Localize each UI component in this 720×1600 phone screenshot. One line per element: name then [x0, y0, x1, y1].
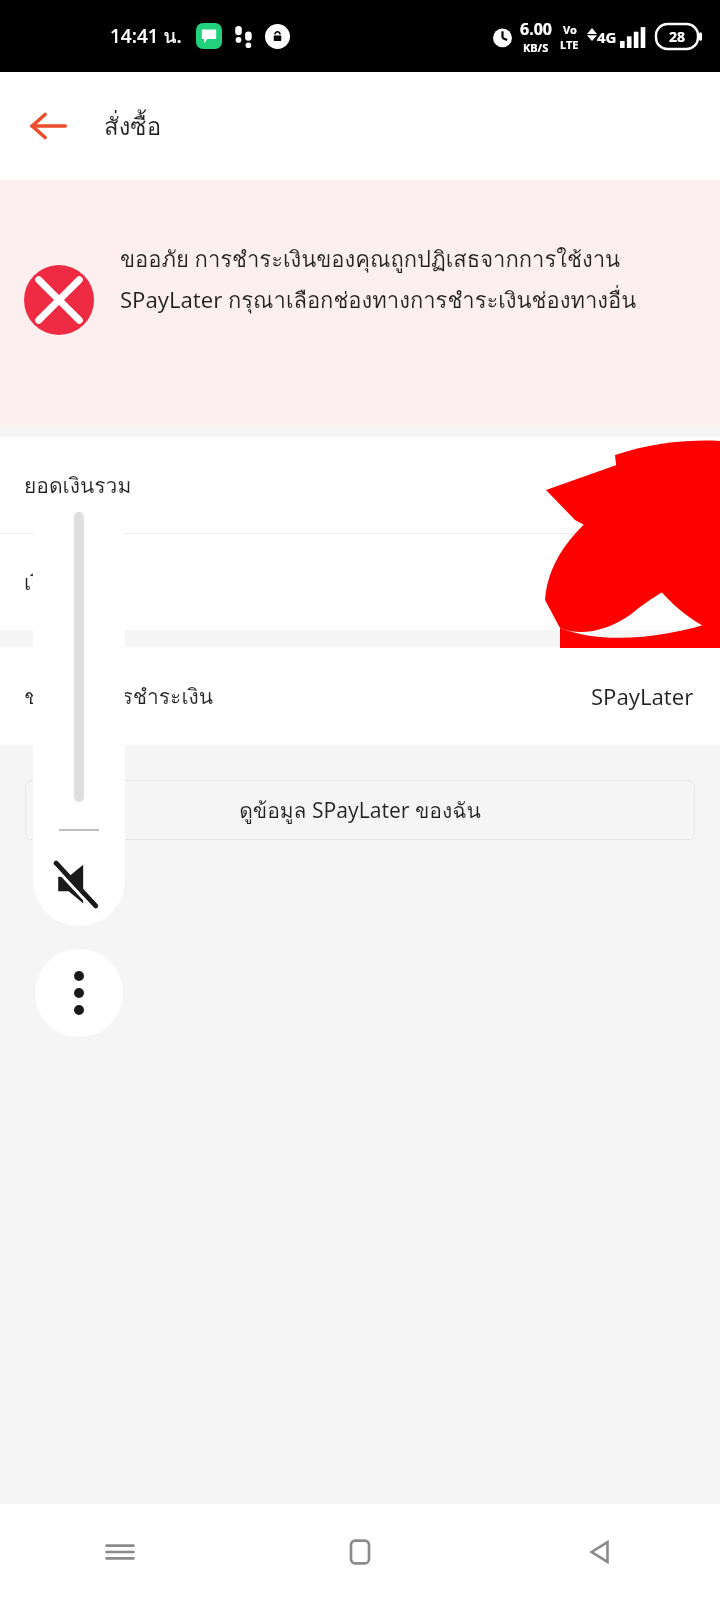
button[interactable]: Back [14, 92, 82, 160]
button[interactable]: ยอดเงินรวม [0, 437, 720, 533]
staticText: 4G [597, 27, 617, 47]
button[interactable]: Back [480, 1504, 720, 1600]
staticText: LTE [560, 37, 579, 52]
staticText: Vo [563, 22, 577, 37]
staticText: 28 [669, 27, 686, 46]
staticText: KB/S [523, 40, 549, 55]
button[interactable]: เงินคงเหลือ [0, 534, 720, 630]
staticText: สั่งซื้อ [104, 107, 162, 145]
button[interactable]: ดูข้อมูล SPayLater ของฉัน [25, 780, 695, 840]
button[interactable]: Home [240, 1504, 480, 1600]
button[interactable]: ช่องทางการชำระเงิน [0, 647, 720, 745]
staticText: ช่องทางการชำระเงิน [24, 680, 214, 713]
button[interactable]: Volume slider [33, 496, 125, 926]
staticText: ดูข้อมูล SPayLater ของฉัน [239, 794, 481, 827]
staticText: เงินคงเหลือ [24, 566, 127, 599]
staticText: 14:41 น. [110, 21, 182, 51]
button[interactable]: Recent apps [0, 1504, 240, 1600]
staticText: ยอดเงินรวม [24, 469, 132, 502]
staticText: ขออภัย การชำระเงินของคุณถูกปฏิเสธจากการใ… [120, 242, 668, 318]
button[interactable]: More volume options [35, 949, 123, 1037]
staticText: SPayLater [591, 681, 694, 711]
staticText: 6.00 [520, 18, 552, 40]
